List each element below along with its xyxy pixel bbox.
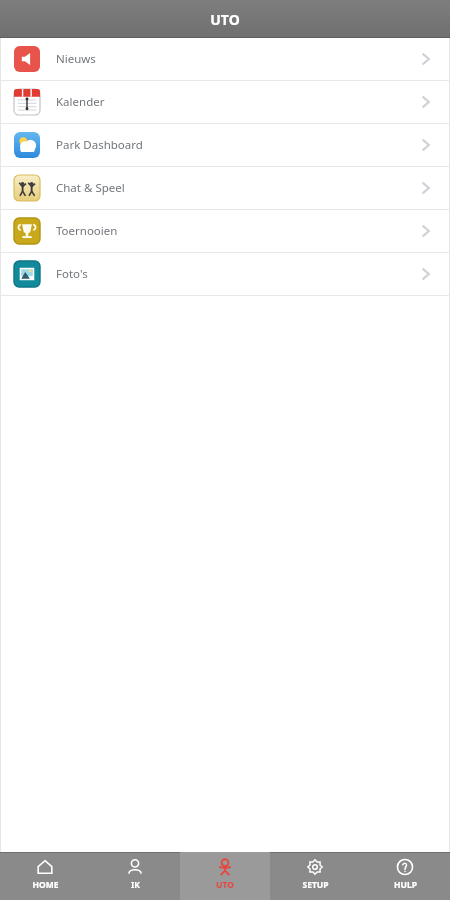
button[interactable]: SETUP	[270, 852, 360, 900]
staticText: HOME	[32, 879, 59, 891]
button[interactable]: HOME	[0, 852, 90, 900]
button[interactable]: Chat & Speel	[0, 167, 450, 209]
staticText: Chat & Speel	[56, 180, 416, 196]
button[interactable]: UTO	[180, 852, 270, 900]
staticText: Kalender	[56, 94, 416, 110]
staticText: Nieuws	[56, 51, 416, 67]
button[interactable]: Kalender	[0, 81, 450, 123]
staticText: Foto's	[56, 266, 416, 282]
staticText: Toernooien	[56, 223, 416, 239]
button[interactable]: Toernooien	[0, 210, 450, 252]
staticText: UTO	[210, 10, 240, 29]
button[interactable]: IK	[90, 852, 180, 900]
staticText: UTO	[216, 879, 234, 891]
button[interactable]: Park Dashboard	[0, 124, 450, 166]
staticText: IK	[131, 879, 140, 891]
staticText: HULP	[394, 879, 417, 891]
staticText: Park Dashboard	[56, 137, 416, 153]
staticText: SETUP	[302, 879, 329, 891]
button[interactable]: HULP	[360, 852, 450, 900]
button[interactable]: Nieuws	[0, 38, 450, 80]
button[interactable]: Foto's	[0, 253, 450, 295]
